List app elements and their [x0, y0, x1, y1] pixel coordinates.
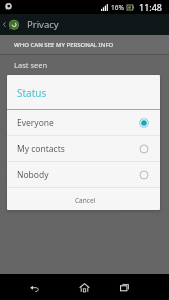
staticText: Last seen [14, 60, 48, 70]
staticText: Everyone [17, 117, 137, 129]
button[interactable]: Back [0, 14, 8, 35]
button[interactable]: Cancel [7, 188, 160, 210]
staticText: Cancel [75, 196, 96, 205]
staticText: My contacts [17, 143, 137, 155]
button[interactable]: My contacts [7, 136, 160, 161]
button[interactable]: Recent apps [115, 278, 133, 296]
staticText: Status [17, 86, 47, 100]
staticText: 16% [111, 3, 124, 12]
button[interactable]: Last seen [0, 55, 169, 75]
button[interactable]: Nobody [7, 162, 160, 187]
button[interactable]: Everyone [7, 110, 160, 135]
staticText: Nobody [17, 169, 137, 181]
staticText: 11:48 [139, 1, 163, 13]
staticText: Privacy [27, 18, 59, 31]
button[interactable]: Home [75, 278, 93, 296]
button[interactable]: Back [25, 278, 43, 296]
staticText: WHO CAN SEE MY PERSONAL INFO [14, 41, 114, 49]
